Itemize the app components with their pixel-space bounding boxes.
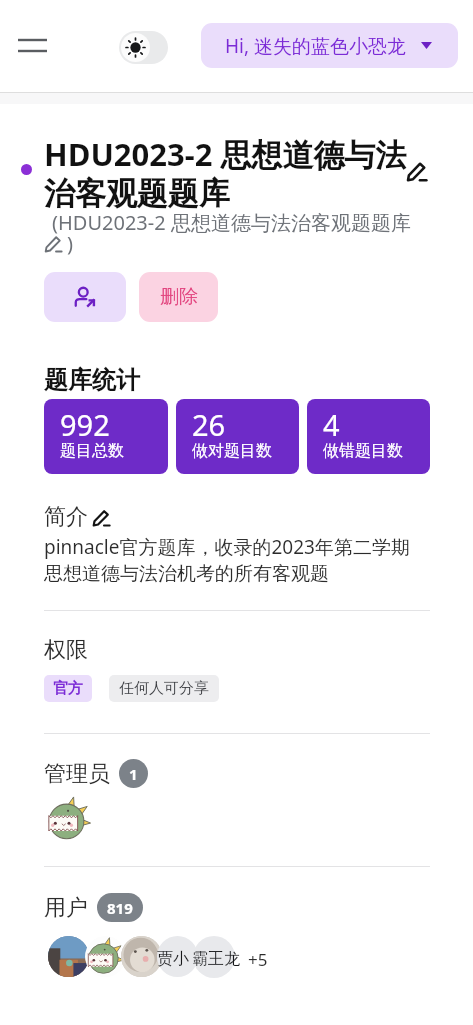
staticText: 简介 xyxy=(44,503,88,531)
button[interactable]: Toggle theme xyxy=(119,31,168,64)
staticText: 做对题目数 xyxy=(192,441,272,461)
button[interactable]: User avatar xyxy=(121,936,162,977)
staticText: (HDU2023-2 思想道德与法治客观题题库 xyxy=(52,209,411,236)
staticText: 用户 xyxy=(44,894,88,922)
button[interactable]: Edit description xyxy=(90,506,112,528)
staticText: HDU2023-2 思想道德与法治客观题题库 xyxy=(44,133,432,213)
button[interactable] xyxy=(193,936,235,978)
button[interactable]: 26 xyxy=(176,399,299,474)
staticText: 1 xyxy=(129,764,138,784)
staticText: 做错题目数 xyxy=(323,441,403,461)
staticText: 4 xyxy=(323,405,340,444)
staticText: +5 xyxy=(248,948,268,971)
button[interactable]: Share xyxy=(44,272,126,322)
staticText: pinnacle官方题库，收录的2023年第二学期思想道德与法治机考的所有客观题 xyxy=(44,534,419,586)
staticText: ) xyxy=(67,230,73,257)
staticText: 官方 xyxy=(53,679,83,698)
staticText: Hi, 迷失的蓝色小恐龙 xyxy=(225,33,407,59)
staticText: 819 xyxy=(107,898,133,918)
button[interactable]: Hi, 迷失的蓝色小恐龙 xyxy=(201,23,458,68)
button[interactable]: 官方 xyxy=(44,675,92,702)
button[interactable]: Menu xyxy=(8,26,57,66)
staticText: 权限 xyxy=(44,636,88,664)
staticText: 删除 xyxy=(160,285,198,309)
staticText: 26 xyxy=(192,405,226,444)
button[interactable]: 992 xyxy=(44,399,168,474)
button[interactable]: User avatar xyxy=(85,936,126,977)
staticText: 霸王龙 xyxy=(192,949,240,969)
button[interactable]: User avatar xyxy=(48,936,89,977)
button[interactable]: 任何人可分享 xyxy=(109,675,219,702)
staticText: 题目总数 xyxy=(60,441,124,461)
button[interactable]: Edit title xyxy=(404,158,430,184)
staticText: 题库统计 xyxy=(44,365,140,395)
staticText: 贾小氵 xyxy=(157,949,193,969)
staticText: 任何人可分享 xyxy=(119,679,209,698)
staticText: 992 xyxy=(60,405,110,444)
button[interactable]: 4 xyxy=(307,399,430,474)
button[interactable] xyxy=(157,936,198,977)
staticText: 管理员 xyxy=(44,760,110,788)
button[interactable]: 删除 xyxy=(139,272,218,322)
